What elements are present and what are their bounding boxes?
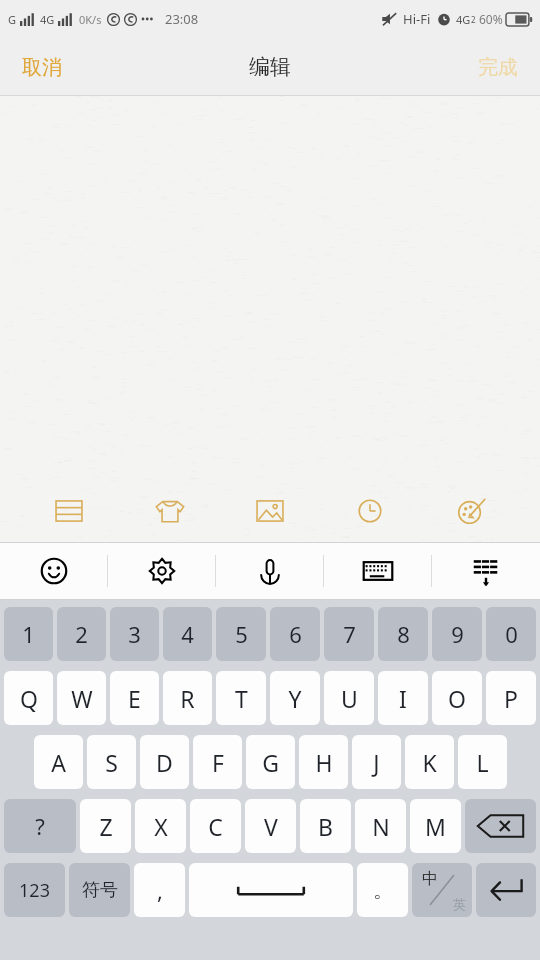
staticText: 符号 [82, 879, 118, 902]
button[interactable]: Insert time [339, 480, 401, 542]
button[interactable]: Enter [476, 863, 536, 917]
button[interactable]: F [193, 735, 242, 789]
button[interactable]: K [405, 735, 454, 789]
staticText: X [154, 811, 168, 842]
button[interactable]: Theme [440, 480, 502, 542]
staticText: Q [20, 683, 38, 714]
staticText: S [105, 747, 118, 778]
staticText: Y [288, 683, 302, 714]
staticText: 7 [343, 619, 356, 649]
button[interactable]: 。 [357, 863, 408, 917]
button[interactable]: , [134, 863, 185, 917]
button[interactable]: Insert picture [239, 480, 301, 542]
staticText: P [504, 683, 518, 714]
button[interactable]: 完成 [456, 45, 540, 90]
staticText: 60% [479, 11, 503, 27]
button[interactable]: 0 [486, 607, 536, 661]
staticText: A [51, 747, 66, 778]
staticText: L [476, 747, 489, 778]
button[interactable]: Text format [38, 480, 100, 542]
staticText: H [315, 747, 333, 778]
staticText: , [157, 875, 163, 905]
staticText: D [156, 747, 173, 778]
button[interactable]: X [135, 799, 186, 853]
button[interactable]: 6 [270, 607, 320, 661]
button[interactable]: Y [270, 671, 320, 725]
button[interactable]: 8 [378, 607, 428, 661]
staticText: 23:08 [165, 10, 199, 28]
staticText: 4G [40, 12, 55, 27]
button[interactable]: A [34, 735, 83, 789]
button[interactable]: G [246, 735, 295, 789]
button[interactable]: Hide keyboard [432, 542, 540, 600]
button[interactable]: N [355, 799, 406, 853]
staticText: U [341, 683, 358, 714]
button[interactable]: D [140, 735, 189, 789]
button[interactable]: 符号 [69, 863, 130, 917]
button[interactable]: Chinese English toggle [412, 863, 472, 917]
staticText: 中 [422, 869, 438, 889]
staticText: N [372, 811, 390, 842]
staticText: R [180, 683, 195, 714]
button[interactable]: Keyboard [324, 542, 432, 600]
staticText: 完成 [478, 55, 518, 80]
staticText: 123 [19, 878, 50, 903]
staticText: 6 [289, 619, 302, 649]
staticText: K [422, 747, 437, 778]
staticText: 8 [397, 619, 410, 649]
staticText: O [448, 683, 466, 714]
button[interactable]: H [299, 735, 348, 789]
staticText: 5 [235, 619, 248, 649]
staticText: 0K/s [79, 12, 102, 27]
button[interactable]: U [324, 671, 374, 725]
button[interactable]: M [410, 799, 461, 853]
staticText: 9 [451, 619, 464, 649]
staticText: 编辑 [249, 54, 291, 80]
staticText: F [212, 747, 224, 778]
button[interactable]: O [432, 671, 482, 725]
staticText: 4G [456, 12, 471, 27]
button[interactable]: T [216, 671, 266, 725]
staticText: ? [35, 811, 45, 841]
staticText: 1 [22, 619, 35, 649]
button[interactable]: P [486, 671, 536, 725]
staticText: I [399, 683, 407, 714]
button[interactable]: 3 [110, 607, 159, 661]
staticText: M [425, 811, 446, 842]
button[interactable]: Emoji [0, 542, 108, 600]
button[interactable]: C [190, 799, 241, 853]
button[interactable]: L [458, 735, 507, 789]
button[interactable]: J [352, 735, 401, 789]
button[interactable]: I [378, 671, 428, 725]
button[interactable]: Settings [108, 542, 216, 600]
button[interactable]: Style [139, 480, 201, 542]
staticText: W [71, 683, 93, 714]
button[interactable]: ? [4, 799, 76, 853]
button[interactable]: Voice input [216, 542, 324, 600]
button[interactable]: 123 [4, 863, 65, 917]
staticText: B [318, 811, 333, 842]
button[interactable]: 5 [216, 607, 266, 661]
button[interactable]: 2 [57, 607, 106, 661]
button[interactable]: 4 [163, 607, 212, 661]
button[interactable]: 9 [432, 607, 482, 661]
staticText: G [262, 747, 279, 778]
button[interactable]: Q [4, 671, 53, 725]
button[interactable]: B [300, 799, 351, 853]
button[interactable]: Space [189, 863, 353, 917]
button[interactable]: V [245, 799, 296, 853]
staticText: V [264, 811, 278, 842]
button[interactable]: Z [80, 799, 131, 853]
button[interactable]: E [110, 671, 159, 725]
button[interactable]: Backspace [465, 799, 536, 853]
staticText: 。 [373, 878, 393, 903]
button[interactable]: 1 [4, 607, 53, 661]
staticText: 英 [453, 896, 466, 912]
button[interactable]: 7 [324, 607, 374, 661]
button[interactable]: S [87, 735, 136, 789]
button[interactable]: 取消 [0, 45, 84, 90]
staticText: E [128, 683, 141, 714]
staticText: Hi-Fi [403, 10, 431, 28]
button[interactable]: W [57, 671, 106, 725]
button[interactable]: R [163, 671, 212, 725]
